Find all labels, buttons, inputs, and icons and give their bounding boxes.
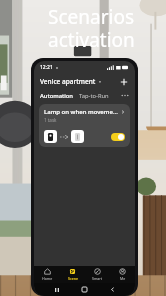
button[interactable]: Me — [110, 266, 135, 283]
staticText: Lamp on when movement det. — [44, 108, 119, 116]
staticText: Scenarios — [48, 4, 135, 30]
button[interactable]: Back — [107, 284, 118, 295]
button[interactable]: Lamp on when movement det. — [39, 104, 130, 147]
button[interactable]: Smart — [85, 266, 110, 283]
staticText: Automation — [40, 92, 73, 100]
staticText: 1 task — [44, 117, 57, 123]
staticText: Smart — [92, 276, 103, 281]
button[interactable]: Toggle automation — [111, 133, 125, 141]
staticText: Home — [42, 276, 53, 281]
button[interactable]: Home — [34, 266, 60, 283]
button[interactable]: Tap-to-Run — [79, 92, 109, 100]
staticText: 12:21 — [40, 64, 53, 71]
staticText: Venice apartment — [40, 77, 96, 86]
staticText: activation — [48, 27, 135, 53]
button[interactable]: Add — [117, 75, 130, 88]
button[interactable]: Scene — [60, 266, 85, 283]
staticText: Tap-to-Run — [79, 92, 109, 100]
button[interactable]: Automation — [40, 92, 73, 100]
staticText: Scene — [68, 276, 78, 281]
button[interactable]: More options — [119, 90, 130, 101]
button[interactable]: Home — [79, 284, 90, 295]
button[interactable]: Venice apartment — [40, 77, 102, 86]
staticText: Me — [120, 276, 126, 281]
button[interactable]: Recents — [51, 284, 62, 295]
